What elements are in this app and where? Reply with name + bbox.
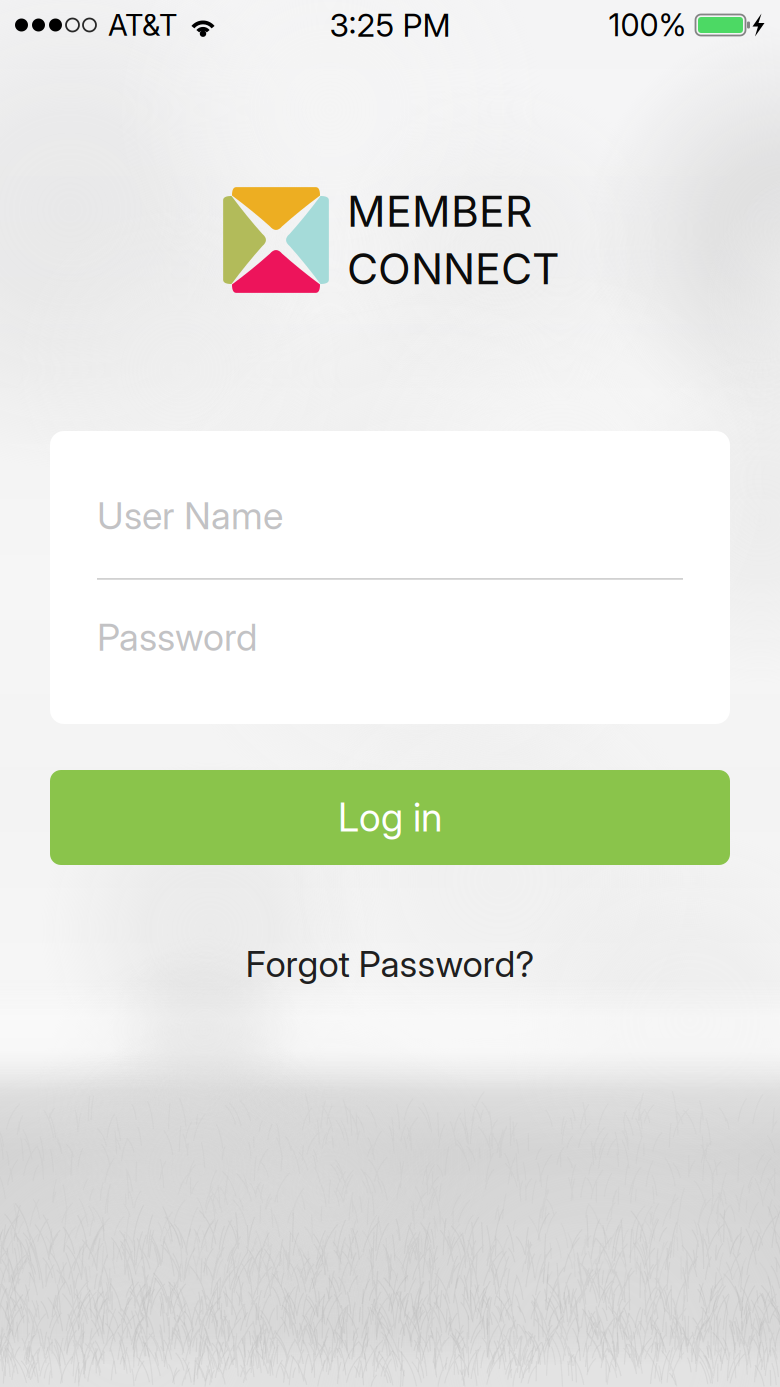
staticText: 100% [608,6,686,43]
staticText: CONNECT [347,243,560,295]
staticText: User Name [97,493,283,538]
staticText: Forgot Password? [245,942,534,986]
staticText: MEMBER [347,185,532,237]
button[interactable]: Log in [50,770,730,865]
button[interactable]: Forgot Password? [221,930,558,998]
staticText: Log in [338,794,442,841]
staticText: 3:25 PM [329,6,450,44]
staticText: Password [97,615,257,660]
staticText: AT&T [108,7,177,43]
